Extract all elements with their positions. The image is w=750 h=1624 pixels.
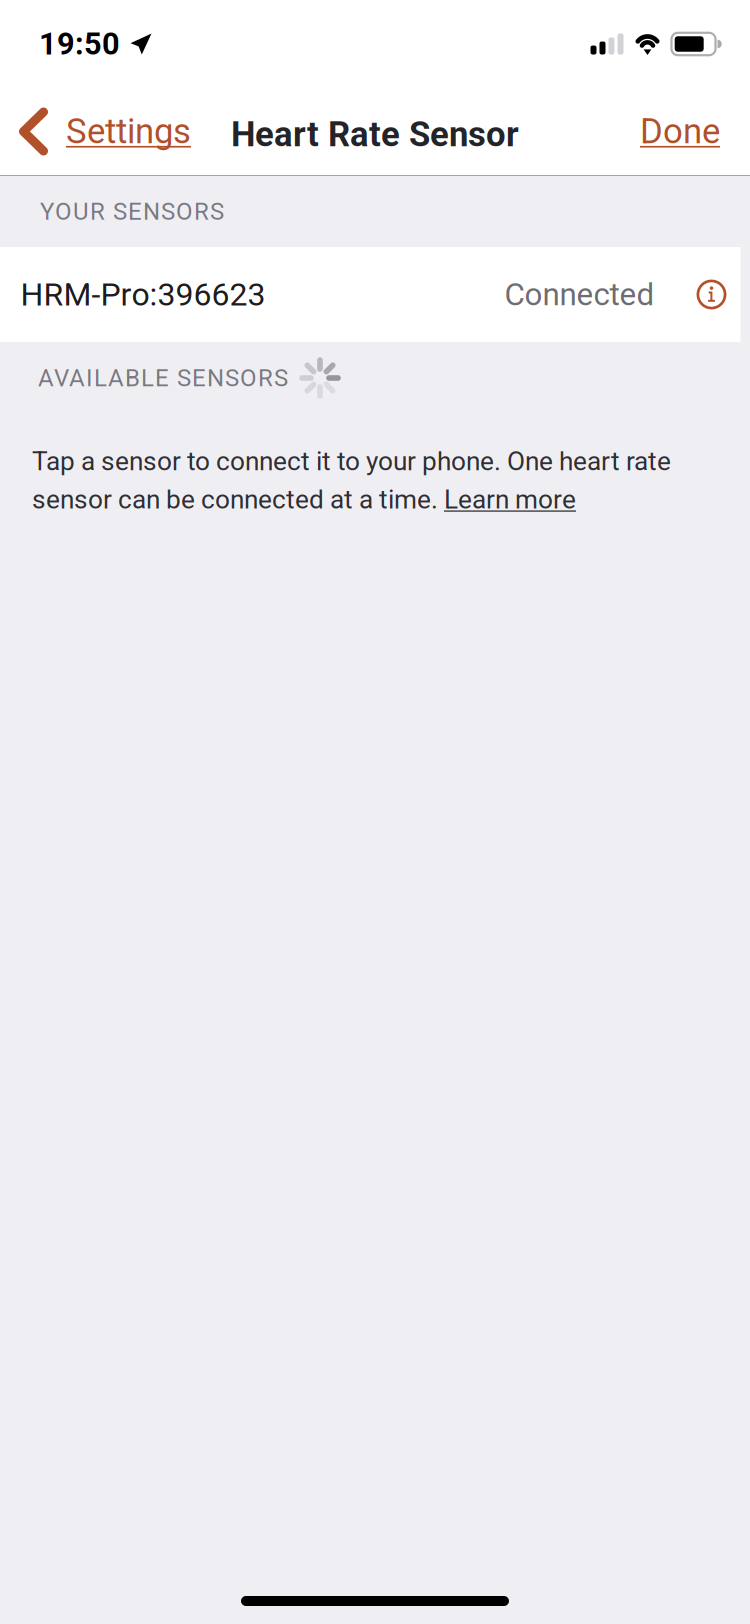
staticText: 19:50 (39, 26, 120, 62)
staticText: Settings (66, 111, 191, 152)
staticText: Connected (504, 276, 654, 313)
staticText: Done (640, 111, 720, 152)
button[interactable]: More info about HRM-Pro:396623 (682, 247, 740, 342)
button[interactable]: Done (616, 88, 750, 175)
staticText: AVAILABLE SENSORS (38, 364, 288, 392)
staticText: Heart Rate Sensor (231, 114, 519, 155)
button[interactable]: Settings (0, 88, 205, 175)
staticText: Tap a sensor to connect it to your phone… (32, 446, 671, 515)
staticText: HRM-Pro:396623 (20, 276, 265, 313)
button[interactable]: HRM-Pro:396623 (0, 247, 740, 342)
staticText: YOUR SENSORS (40, 197, 224, 225)
